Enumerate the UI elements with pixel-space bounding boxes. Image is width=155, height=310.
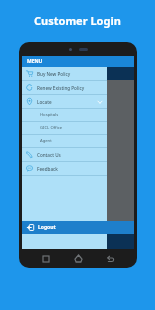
staticText: Buy New Policy (37, 71, 71, 77)
staticText: Locate (37, 99, 52, 105)
button[interactable]: Locate (22, 95, 107, 108)
button[interactable]: Home (72, 252, 85, 265)
button[interactable]: Back (104, 252, 117, 265)
button[interactable]: GICL Office (22, 122, 107, 134)
staticText: Customer Login (34, 13, 121, 28)
staticText: Agent (40, 138, 52, 144)
staticText: Contact Us (37, 152, 61, 158)
staticText: MENU (27, 58, 43, 65)
button[interactable]: Logout (22, 221, 134, 234)
button[interactable]: Hospitals (22, 109, 107, 121)
staticText: Logout (38, 224, 56, 231)
button[interactable]: Feedback (22, 162, 107, 175)
button[interactable]: Renew Existing Policy (22, 81, 107, 94)
button[interactable]: MENU (22, 56, 107, 67)
staticText: Hospitals (40, 112, 59, 118)
staticText: Feedback (37, 166, 58, 172)
button[interactable]: Contact Us (22, 148, 107, 161)
button[interactable]: Buy New Policy (22, 67, 107, 80)
button[interactable]: Recent apps (39, 252, 52, 265)
button[interactable]: Agent (22, 135, 107, 147)
staticText: GICL Office (40, 125, 63, 131)
staticText: Renew Existing Policy (37, 85, 85, 91)
